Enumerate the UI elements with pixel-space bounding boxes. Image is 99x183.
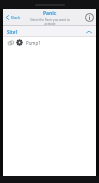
button[interactable]: Info <box>85 9 94 26</box>
staticText: Back <box>11 15 21 21</box>
staticText: Select the Panic you want to activate <box>30 18 70 26</box>
button[interactable]: Pump1 <box>3 37 96 48</box>
staticText: Pump1 <box>26 40 41 46</box>
button[interactable]: Site1 <box>3 26 96 37</box>
button[interactable]: Back <box>5 9 21 26</box>
staticText: Site1 <box>7 29 18 35</box>
staticText: Panic <box>43 10 57 17</box>
